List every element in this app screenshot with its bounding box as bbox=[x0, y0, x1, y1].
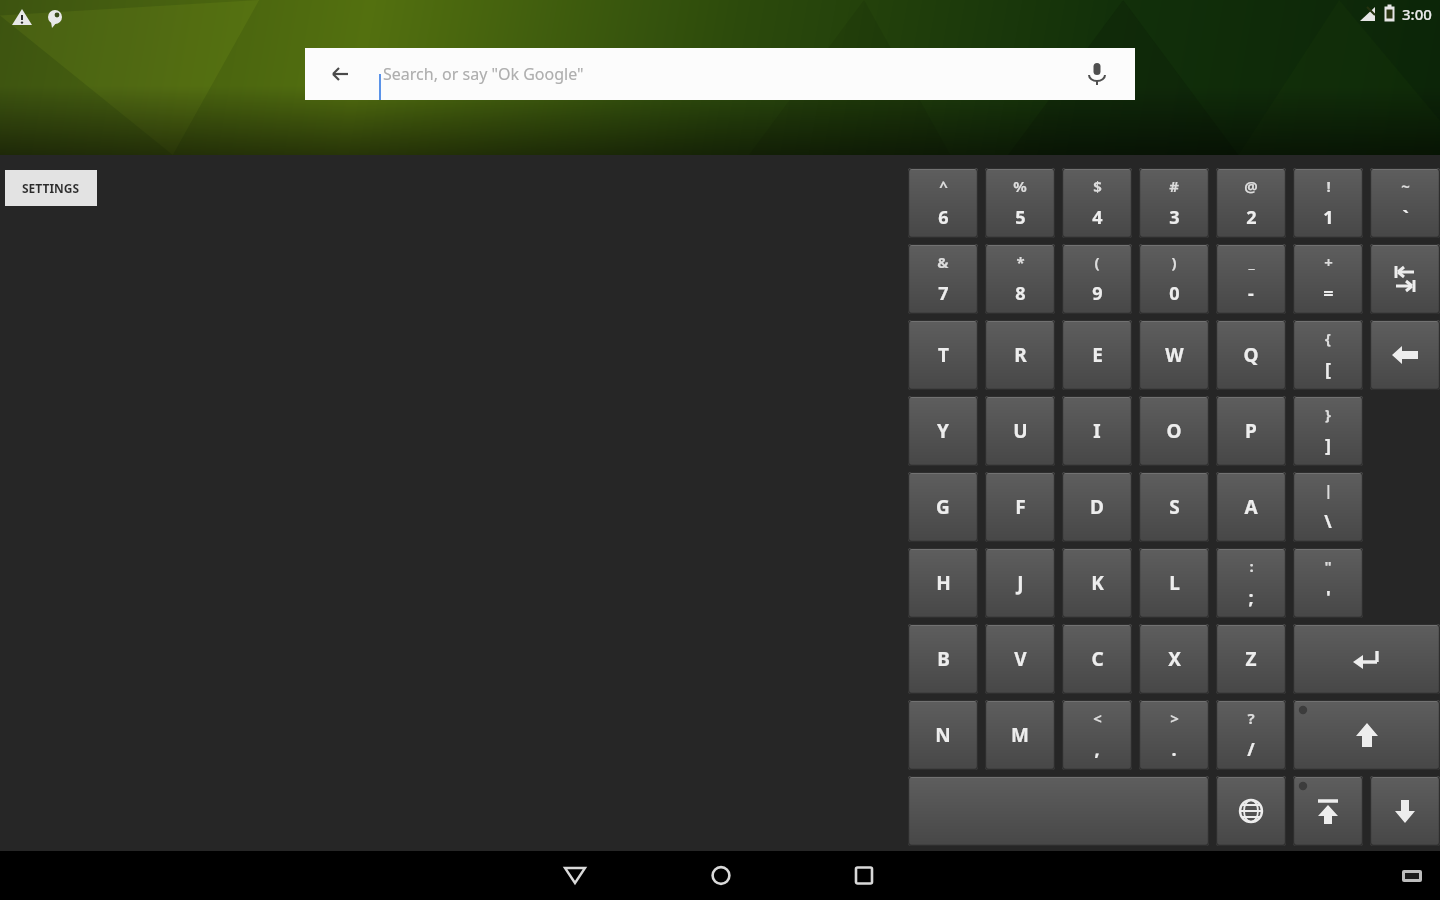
staticText: ' bbox=[1326, 585, 1331, 610]
button[interactable]: W bbox=[1139, 320, 1209, 390]
staticText: 1 bbox=[1323, 205, 1334, 230]
button[interactable]: S bbox=[1139, 472, 1209, 542]
staticText: A bbox=[1244, 494, 1258, 520]
button[interactable]: Home bbox=[699, 856, 743, 896]
staticText: T bbox=[938, 342, 949, 368]
button[interactable]: Change input method bbox=[1216, 776, 1286, 846]
button[interactable]: L bbox=[1139, 548, 1209, 618]
button[interactable]: | \ bbox=[1293, 472, 1363, 542]
button[interactable]: Backspace bbox=[1370, 320, 1440, 390]
staticText: L bbox=[1169, 570, 1180, 596]
button[interactable]: V bbox=[985, 624, 1055, 694]
button[interactable]: ^ 6 bbox=[908, 168, 978, 238]
button[interactable]: " ' bbox=[1293, 548, 1363, 618]
staticText: & bbox=[937, 252, 949, 272]
button[interactable]: & 7 bbox=[908, 244, 978, 314]
button[interactable]: R bbox=[985, 320, 1055, 390]
staticText: Q bbox=[1243, 342, 1259, 368]
staticText: 8 bbox=[1015, 281, 1026, 306]
button[interactable]: N bbox=[908, 700, 978, 770]
button[interactable]: C bbox=[1062, 624, 1132, 694]
button[interactable]: O bbox=[1139, 396, 1209, 466]
button[interactable]: A bbox=[1216, 472, 1286, 542]
button[interactable]: P bbox=[1216, 396, 1286, 466]
button[interactable]: K bbox=[1062, 548, 1132, 618]
button[interactable]: @ 2 bbox=[1216, 168, 1286, 238]
button[interactable]: < , bbox=[1062, 700, 1132, 770]
button[interactable]: > . bbox=[1139, 700, 1209, 770]
button[interactable]: ( 9 bbox=[1062, 244, 1132, 314]
button[interactable]: B bbox=[908, 624, 978, 694]
button[interactable]: Space bbox=[908, 776, 1209, 846]
staticText: ~ bbox=[1401, 176, 1410, 196]
button[interactable]: M bbox=[985, 700, 1055, 770]
button[interactable]: T bbox=[908, 320, 978, 390]
staticText: 7 bbox=[938, 281, 949, 306]
button[interactable]: I bbox=[1062, 396, 1132, 466]
staticText: | bbox=[1324, 480, 1333, 500]
button[interactable]: Z bbox=[1216, 624, 1286, 694]
button[interactable]: : ; bbox=[1216, 548, 1286, 618]
staticText: = bbox=[1323, 281, 1334, 306]
button[interactable]: Caps lock bbox=[1293, 776, 1363, 846]
staticText: ? bbox=[1247, 708, 1255, 728]
staticText: / bbox=[1247, 737, 1255, 762]
button[interactable]: Recent apps bbox=[842, 856, 886, 896]
staticText: 0 bbox=[1169, 281, 1180, 306]
button[interactable]: E bbox=[1062, 320, 1132, 390]
staticText: ; bbox=[1248, 585, 1254, 610]
button[interactable]: F bbox=[985, 472, 1055, 542]
button[interactable]: % 5 bbox=[985, 168, 1055, 238]
button[interactable]: Hide keyboard bbox=[1370, 776, 1440, 846]
button[interactable]: G bbox=[908, 472, 978, 542]
button[interactable]: Back bbox=[553, 856, 597, 896]
button[interactable]: Q bbox=[1216, 320, 1286, 390]
staticText: X bbox=[1168, 646, 1181, 672]
staticText: W bbox=[1165, 342, 1184, 368]
staticText: " bbox=[1324, 556, 1332, 576]
button[interactable]: H bbox=[908, 548, 978, 618]
button[interactable]: Shift bbox=[1293, 700, 1440, 770]
staticText: Y bbox=[937, 418, 949, 444]
staticText: K bbox=[1091, 570, 1104, 596]
button[interactable]: J bbox=[985, 548, 1055, 618]
button[interactable]: Back bbox=[323, 57, 357, 91]
button[interactable]: # 3 bbox=[1139, 168, 1209, 238]
staticText: Search, or say "Ok Google" bbox=[383, 63, 584, 85]
staticText: J bbox=[1017, 570, 1024, 596]
staticText: + bbox=[1324, 252, 1333, 272]
button[interactable]: D bbox=[1062, 472, 1132, 542]
button[interactable]: Back bbox=[305, 48, 1135, 100]
staticText: 4 bbox=[1092, 205, 1103, 230]
staticText: ) bbox=[1171, 252, 1177, 272]
staticText: O bbox=[1166, 418, 1182, 444]
button[interactable]: * 8 bbox=[985, 244, 1055, 314]
button[interactable]: Y bbox=[908, 396, 978, 466]
button[interactable]: } ] bbox=[1293, 396, 1363, 466]
button[interactable]: U bbox=[985, 396, 1055, 466]
button[interactable]: ~ ` bbox=[1370, 168, 1440, 238]
staticText: 9 bbox=[1092, 281, 1103, 306]
staticText: 2 bbox=[1246, 205, 1257, 230]
button[interactable]: $ 4 bbox=[1062, 168, 1132, 238]
staticText: > bbox=[1170, 708, 1179, 728]
button[interactable]: SETTINGS bbox=[5, 170, 97, 206]
button[interactable]: ! 1 bbox=[1293, 168, 1363, 238]
button[interactable]: Voice search bbox=[1079, 56, 1115, 92]
staticText: R bbox=[1014, 342, 1027, 368]
button[interactable]: Tab bbox=[1370, 244, 1440, 314]
staticText: C bbox=[1091, 646, 1104, 672]
button[interactable]: { [ bbox=[1293, 320, 1363, 390]
button[interactable]: ? / bbox=[1216, 700, 1286, 770]
staticText: SETTINGS bbox=[22, 180, 80, 196]
button[interactable]: Enter bbox=[1293, 624, 1440, 694]
button[interactable]: _ - bbox=[1216, 244, 1286, 314]
button[interactable]: Switch keyboard bbox=[1398, 865, 1426, 887]
button[interactable]: X bbox=[1139, 624, 1209, 694]
button[interactable]: + = bbox=[1293, 244, 1363, 314]
staticText: E bbox=[1092, 342, 1103, 368]
staticText: D bbox=[1090, 494, 1104, 520]
staticText: % bbox=[1013, 176, 1027, 196]
staticText: U bbox=[1013, 418, 1028, 444]
button[interactable]: ) 0 bbox=[1139, 244, 1209, 314]
